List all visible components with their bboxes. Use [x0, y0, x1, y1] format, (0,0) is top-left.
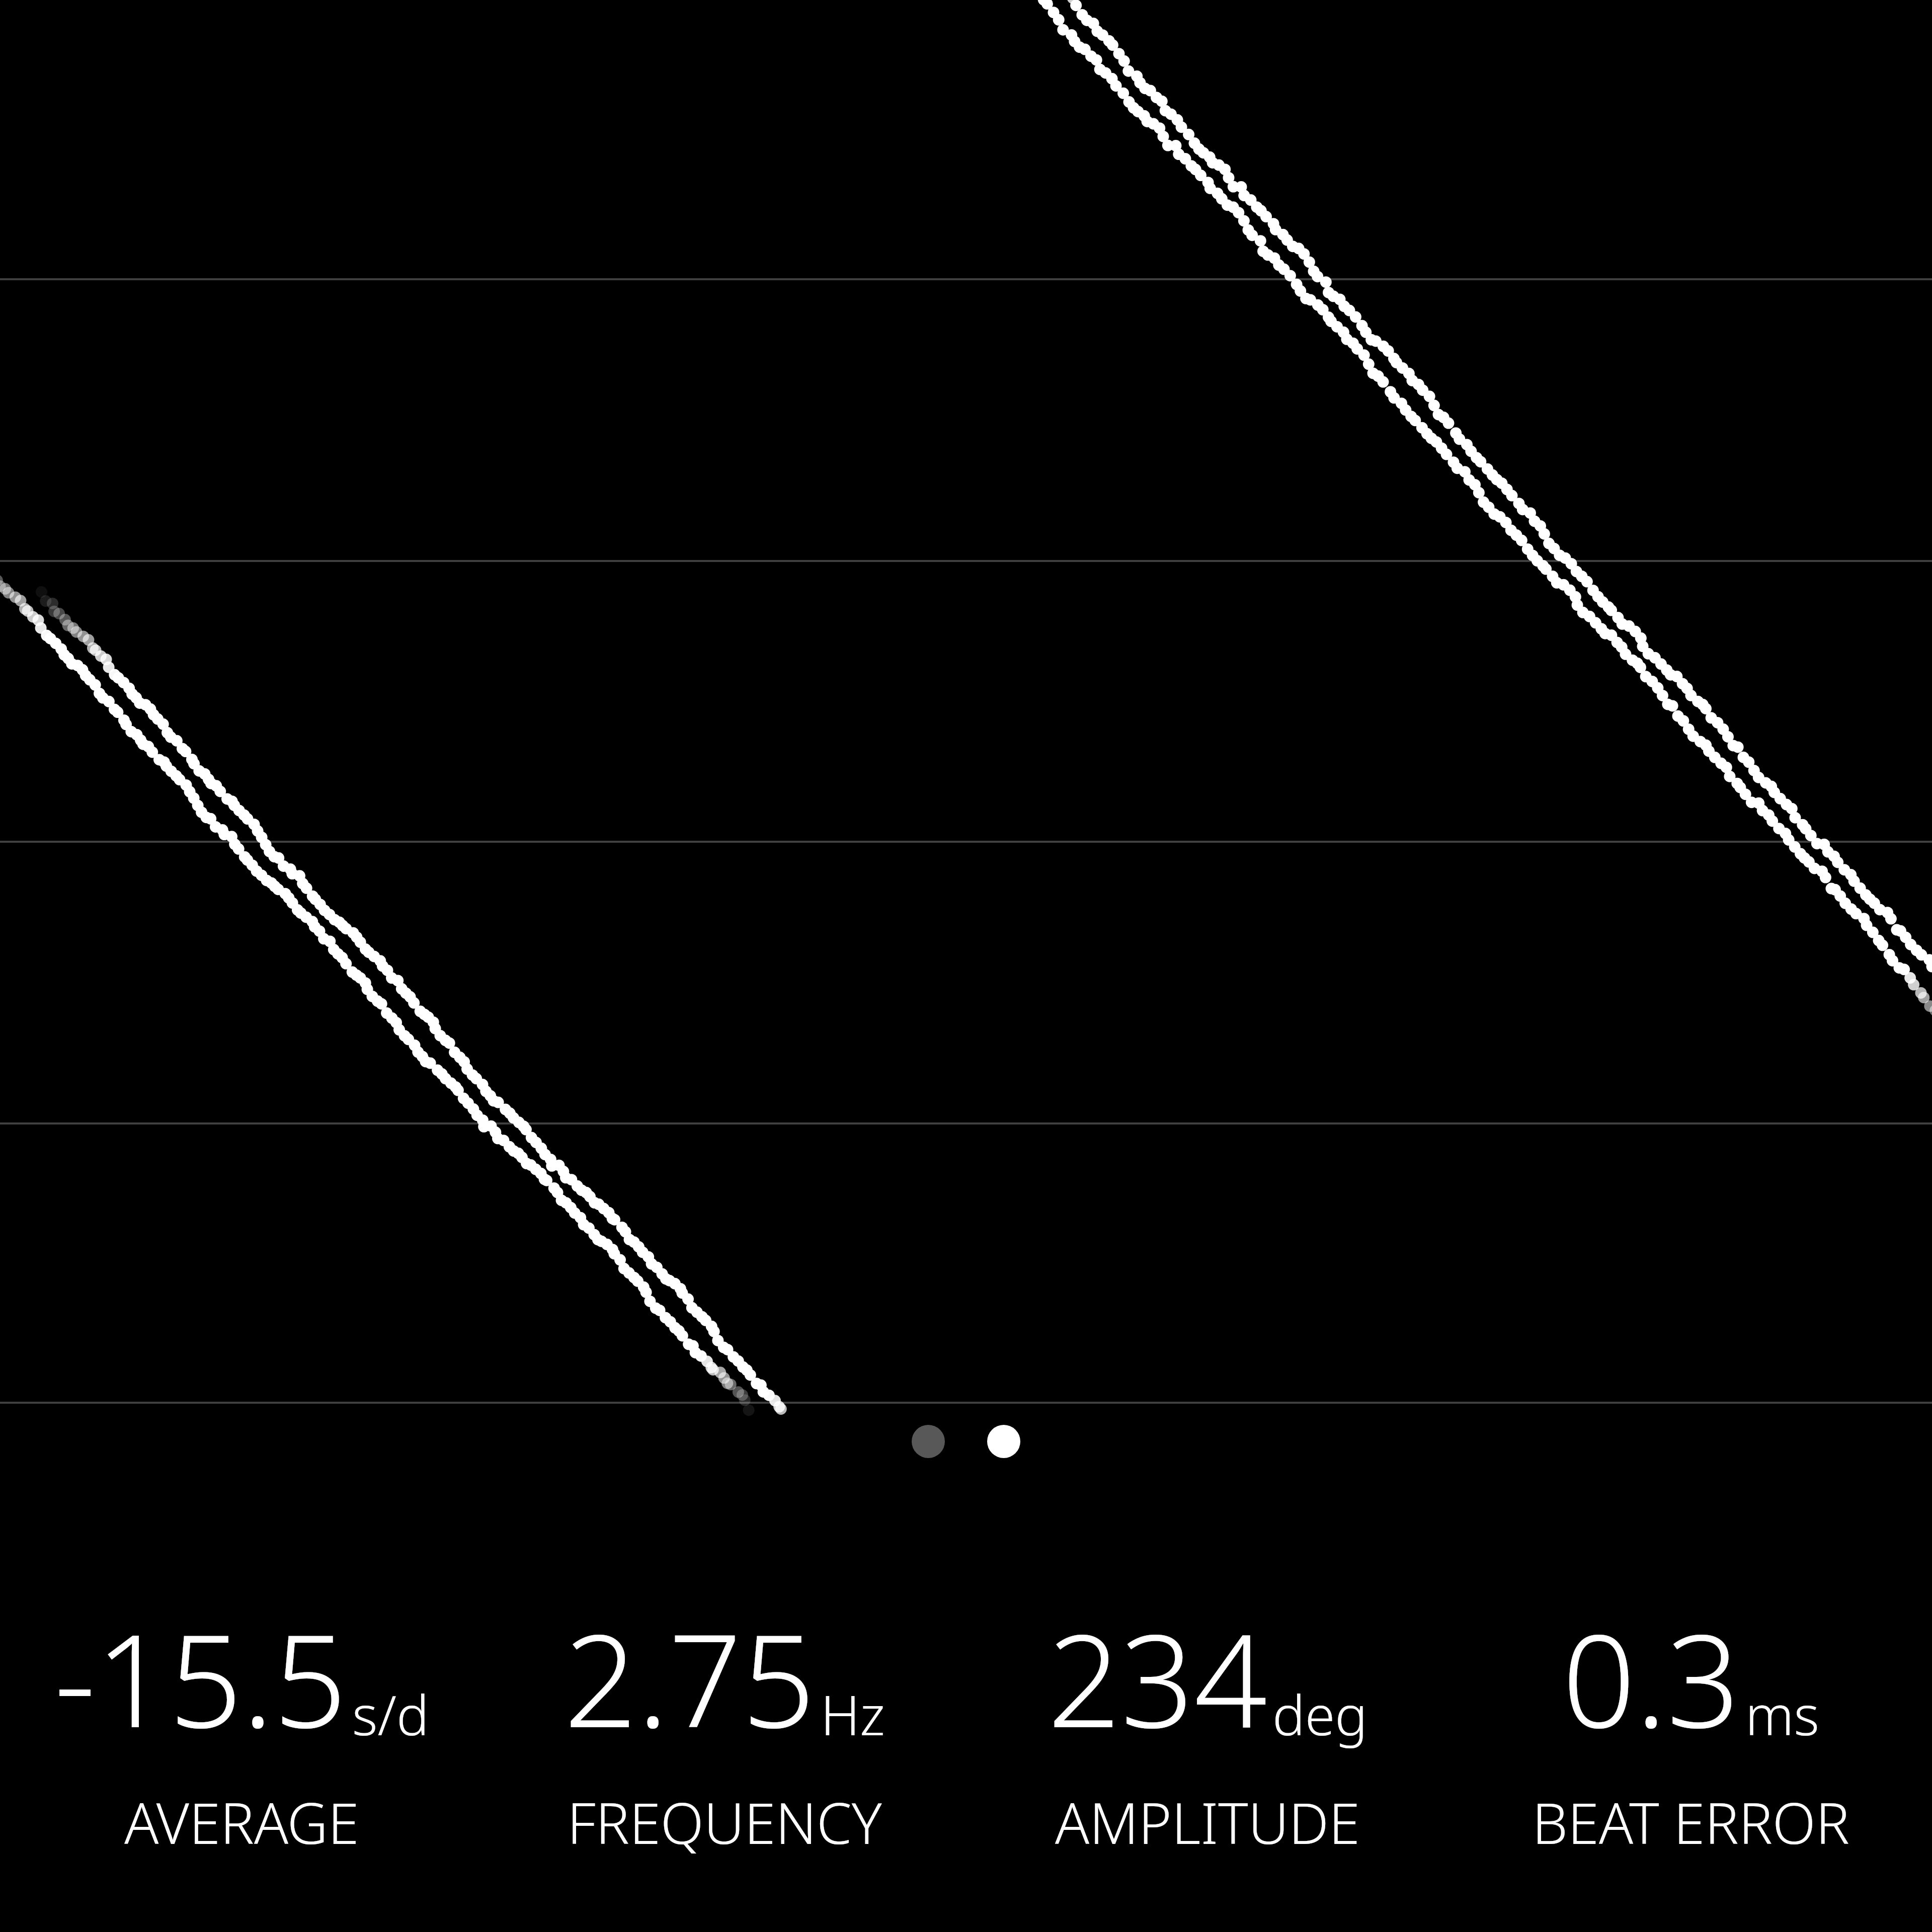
staticText: AMPLITUDE [1055, 1784, 1360, 1861]
staticText: FREQUENCY [567, 1784, 882, 1861]
staticText: s/d [352, 1677, 429, 1751]
staticText: Hz [821, 1677, 886, 1751]
button[interactable]: Page 2, selected [987, 1425, 1020, 1458]
button[interactable]: 234 [966, 1590, 1449, 1861]
staticText: ms [1745, 1677, 1819, 1751]
button[interactable]: -15.5 [0, 1590, 483, 1861]
button[interactable]: 0.3 [1449, 1590, 1932, 1861]
staticText: BEAT ERROR [1532, 1784, 1849, 1861]
button[interactable]: Page 1 [912, 1425, 945, 1458]
staticText: -15.5 [54, 1590, 347, 1764]
staticText: 0.3 [1562, 1590, 1740, 1764]
staticText: 234 [1048, 1590, 1267, 1764]
staticText: deg [1272, 1677, 1368, 1751]
button[interactable]: 2.75 [483, 1590, 966, 1861]
button[interactable]: Rate trace graph [0, 0, 1932, 1405]
staticText: 2.75 [564, 1590, 816, 1764]
staticText: AVERAGE [124, 1784, 359, 1861]
